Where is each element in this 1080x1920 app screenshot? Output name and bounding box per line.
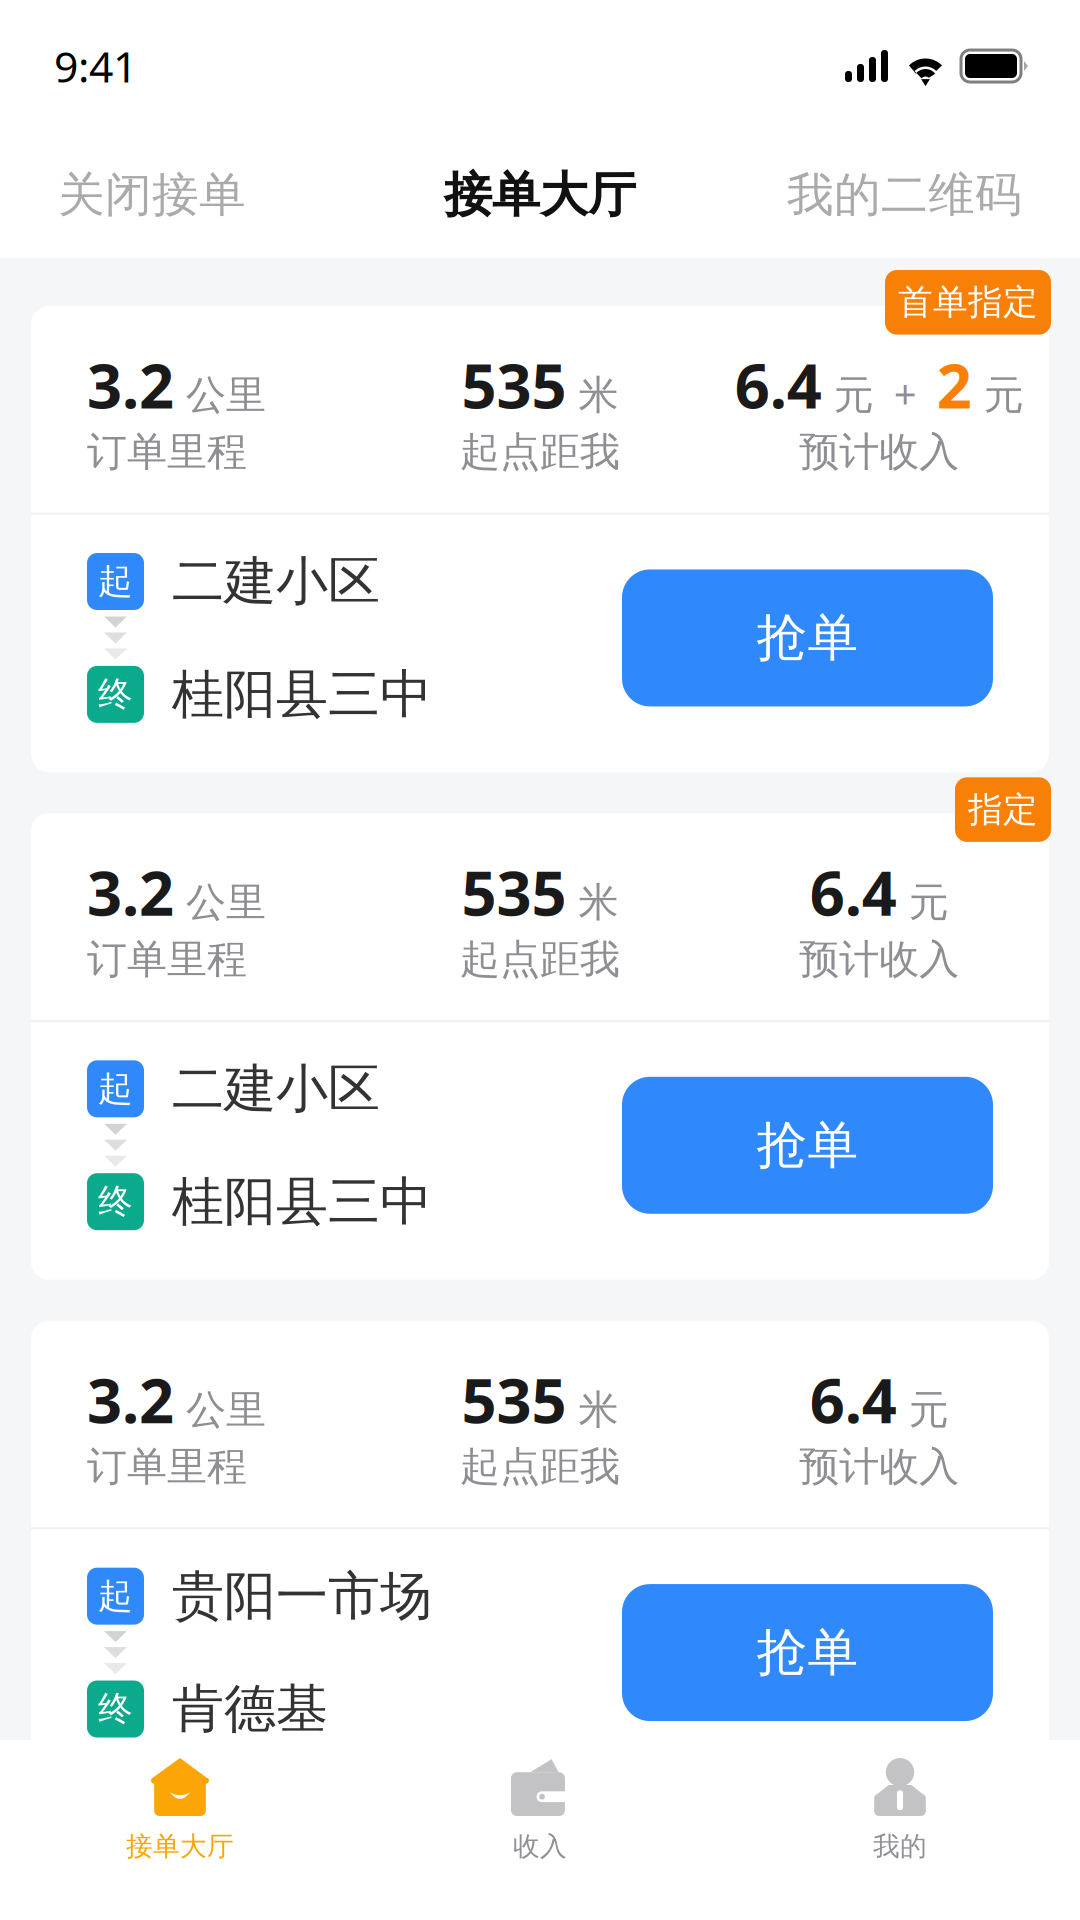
staticText: 535: [461, 344, 566, 425]
staticText: 终: [98, 1688, 133, 1730]
staticText: 起点距我: [460, 1442, 620, 1491]
staticText: 公里: [174, 371, 266, 420]
staticText: 米: [566, 878, 618, 927]
staticText: 我的二维码: [787, 166, 1022, 224]
staticText: 起: [98, 1067, 133, 1110]
staticText: 2: [937, 344, 972, 425]
staticText: 公里: [174, 878, 266, 927]
staticText: 收入: [513, 1830, 567, 1863]
button[interactable]: 接单大厅: [0, 1740, 360, 1920]
staticText: 535: [461, 851, 566, 933]
staticText: 桂阳县三中: [172, 1170, 432, 1234]
staticText: 起: [98, 1575, 133, 1617]
staticText: 桂阳县三中: [172, 662, 432, 726]
button[interactable]: 抢单: [622, 1077, 993, 1214]
staticText: 6.4: [810, 851, 897, 933]
staticText: 公里: [174, 1385, 266, 1434]
button[interactable]: 抢单: [622, 1584, 993, 1721]
staticText: 接单大厅: [444, 165, 636, 224]
staticText: 预计收入: [799, 427, 959, 476]
staticText: 535: [461, 1359, 566, 1440]
staticText: 米: [566, 371, 618, 420]
staticText: 订单里程: [87, 935, 247, 984]
button[interactable]: 我的: [720, 1740, 1080, 1920]
button[interactable]: 关闭接单: [58, 166, 246, 224]
staticText: 元: [972, 371, 1024, 420]
staticText: 米: [566, 1385, 618, 1434]
button[interactable]: 抢单: [622, 569, 993, 706]
staticText: 3.2: [87, 851, 174, 933]
staticText: 元: [897, 1385, 949, 1434]
staticText: 指定: [968, 788, 1038, 831]
staticText: 抢单: [756, 607, 858, 669]
staticText: 3.2: [87, 1359, 174, 1440]
staticText: 终: [98, 1180, 133, 1223]
staticText: 6.4: [735, 344, 822, 425]
staticText: 肯德基: [172, 1677, 328, 1741]
button[interactable]: 3.2: [31, 813, 1049, 1280]
staticText: 我的: [873, 1830, 927, 1863]
staticText: 起点距我: [460, 935, 620, 984]
staticText: 起点距我: [460, 427, 620, 476]
staticText: 订单里程: [87, 1442, 247, 1491]
staticText: 二建小区: [172, 1057, 380, 1121]
staticText: 接单大厅: [126, 1830, 234, 1863]
button[interactable]: 3.2: [31, 306, 1049, 772]
staticText: 订单里程: [87, 427, 247, 476]
staticText: 6.4: [810, 1359, 897, 1440]
button[interactable]: 我的二维码: [787, 166, 1022, 224]
staticText: 元: [822, 371, 874, 420]
staticText: 终: [98, 673, 133, 716]
staticText: 抢单: [756, 1621, 858, 1684]
staticText: 预计收入: [799, 1442, 959, 1491]
staticText: 首单指定: [898, 281, 1038, 324]
staticText: 贵阳一市场: [172, 1564, 432, 1628]
staticText: 元: [897, 878, 949, 927]
staticText: 起: [98, 560, 133, 603]
staticText: 预计收入: [799, 935, 959, 984]
button[interactable]: 收入: [360, 1740, 720, 1920]
staticText: 3.2: [87, 344, 174, 425]
staticText: 抢单: [756, 1114, 858, 1176]
staticText: 关闭接单: [58, 166, 246, 224]
staticText: 9:41: [54, 38, 137, 94]
staticText: 二建小区: [172, 550, 380, 613]
button[interactable]: 3.2: [31, 1321, 1049, 1787]
staticText: +: [874, 366, 937, 419]
